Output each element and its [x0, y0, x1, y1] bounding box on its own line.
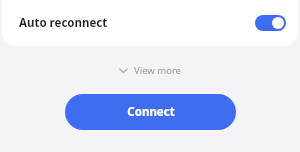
button[interactable]: View more [111, 61, 189, 80]
button[interactable]: Connect [65, 94, 236, 130]
staticText: View more [134, 64, 181, 77]
button[interactable]: Auto reconnect [2, 0, 298, 46]
staticText: Auto reconnect [19, 15, 108, 31]
button[interactable]: Auto reconnect toggle, on [255, 15, 286, 31]
staticText: Connect [127, 104, 175, 120]
